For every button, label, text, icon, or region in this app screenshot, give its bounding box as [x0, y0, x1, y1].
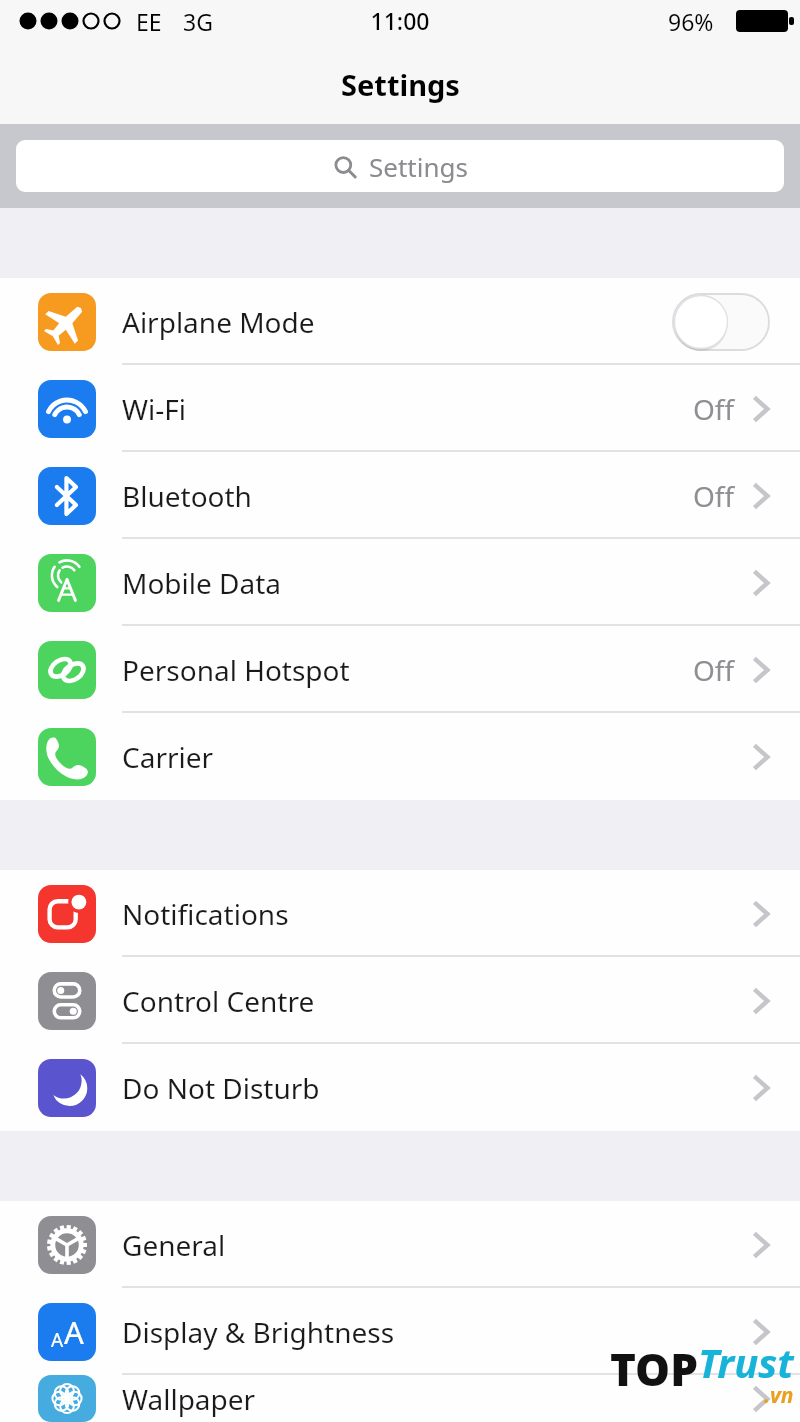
button[interactable]: Wi-Fi: [0, 365, 800, 452]
button[interactable]: Wallpaper: [0, 1375, 800, 1422]
staticText: Personal Hotspot: [122, 651, 350, 689]
staticText: Wallpaper: [122, 1380, 256, 1418]
staticText: EE: [136, 6, 162, 37]
button[interactable]: Do Not Disturb: [0, 1044, 800, 1131]
button[interactable]: A: [0, 1288, 800, 1375]
button[interactable]: Control Centre: [0, 957, 800, 1044]
staticText: General: [122, 1226, 226, 1264]
staticText: Wi-Fi: [122, 390, 187, 428]
button[interactable]: Airplane Mode, off: [672, 293, 770, 351]
button[interactable]: General: [0, 1201, 800, 1288]
button[interactable]: Personal Hotspot: [0, 626, 800, 713]
staticText: Off: [693, 651, 735, 689]
staticText: Do Not Disturb: [122, 1069, 320, 1107]
staticText: Notifications: [122, 895, 289, 933]
staticText: Off: [693, 477, 735, 515]
button[interactable]: Carrier: [0, 713, 800, 800]
button[interactable]: Mobile Data: [0, 539, 800, 626]
staticText: Settings: [341, 65, 460, 104]
staticText: 11:00: [0, 5, 800, 36]
staticText: Airplane Mode: [122, 303, 315, 341]
staticText: Settings: [369, 149, 468, 184]
staticText: Trust: [698, 1335, 794, 1389]
staticText: A: [64, 1311, 84, 1353]
staticText: A: [51, 1327, 64, 1353]
button[interactable]: Notifications: [0, 870, 800, 957]
staticText: Off: [693, 390, 735, 428]
staticText: Bluetooth: [122, 477, 252, 515]
staticText: .vn: [764, 1381, 794, 1410]
staticText: TOP: [610, 1339, 698, 1399]
staticText: Display & Brightness: [122, 1313, 395, 1351]
button[interactable]: Airplane Mode: [0, 278, 800, 365]
button[interactable]: Search Settings: [16, 140, 784, 192]
staticText: Carrier: [122, 738, 214, 776]
button[interactable]: Bluetooth: [0, 452, 800, 539]
staticText: 96%: [668, 6, 714, 37]
staticText: Mobile Data: [122, 564, 282, 602]
staticText: 3G: [183, 6, 213, 37]
staticText: Control Centre: [122, 982, 315, 1020]
